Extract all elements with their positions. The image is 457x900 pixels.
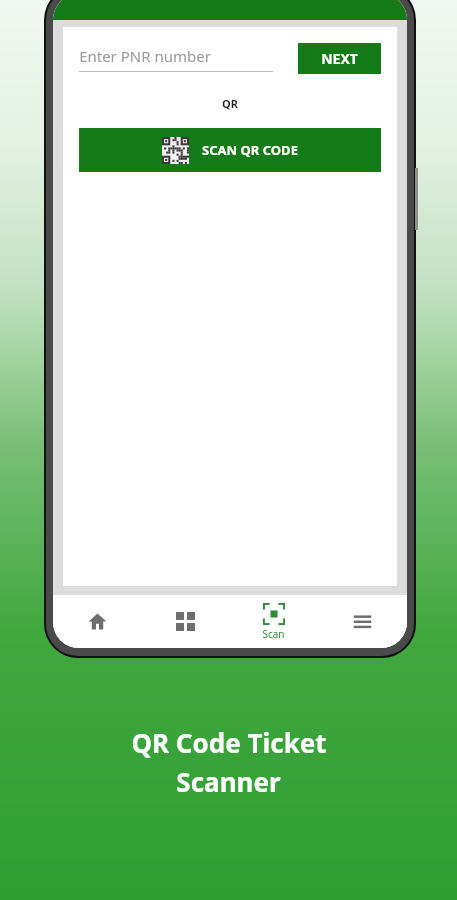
staticText: SCAN QR CODE <box>202 141 298 159</box>
button[interactable]: Scan <box>229 595 318 648</box>
button[interactable]: SCAN QR CODE <box>79 128 381 172</box>
staticText: Scan <box>262 627 285 641</box>
button[interactable]: Menu <box>318 595 407 648</box>
staticText: Scanner <box>176 764 281 799</box>
staticText: QR Code Ticket <box>131 725 327 760</box>
staticText: QR <box>222 96 238 111</box>
staticText: Enter PNR number <box>79 46 211 66</box>
button[interactable]: Home <box>53 595 141 648</box>
staticText: NEXT <box>321 49 358 68</box>
button[interactable]: Dashboard <box>141 595 229 648</box>
button[interactable]: NEXT <box>298 43 381 74</box>
